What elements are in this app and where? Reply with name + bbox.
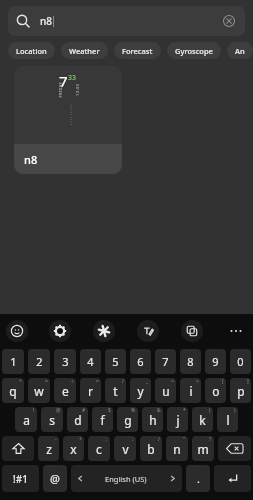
button[interactable]: Emoji [6,320,28,342]
button[interactable]: × [28,378,50,403]
button[interactable]: ÷ [54,378,76,403]
staticText: h [149,412,157,428]
button[interactable]: $ [92,407,113,432]
staticText: ) [234,407,236,414]
staticText: 9 [212,354,219,369]
staticText: Forecast [122,46,153,56]
button[interactable]: @ [43,465,67,492]
staticText: y [137,383,144,399]
button[interactable]: / [105,378,126,403]
button[interactable]: = [80,378,101,403]
staticText: e [62,383,69,399]
button[interactable]: / [140,436,162,461]
staticText: i [189,383,193,399]
button[interactable]: Weather [61,42,108,59]
button[interactable]: Stickers [93,320,115,342]
staticText: 5 [112,354,119,369]
button[interactable]: Settings [49,320,71,342]
button[interactable]: Backspace [218,436,251,461]
button[interactable]: ] [230,378,251,403]
button[interactable]: * [167,407,188,432]
button[interactable]: & [142,407,163,432]
button[interactable]: < [155,378,176,403]
staticText: !#1 [13,472,28,486]
staticText: z [46,441,52,457]
staticText: @ [56,407,61,414]
button[interactable]: 5 [105,349,126,374]
staticText: Gyroscope [175,46,213,56]
button[interactable]: + [2,378,24,403]
staticText: x [70,441,77,457]
staticText: ? [209,436,212,443]
staticText: > [196,378,199,385]
button[interactable]: 2 [28,349,50,374]
staticText: 1 [10,354,17,369]
button[interactable]: " [166,436,188,461]
button[interactable]: Location [8,42,55,59]
button[interactable]: ! [15,407,37,432]
button[interactable]: 6 [130,349,151,374]
staticText: m [197,441,209,457]
staticText: p [237,383,245,399]
button[interactable]: 0 [230,349,251,374]
button[interactable]: Clipboard [181,320,203,342]
button[interactable]: !#1 [2,465,39,492]
button[interactable]: ; [114,436,136,461]
button[interactable]: : [88,436,110,461]
staticText: Analog C [235,46,245,56]
button[interactable]: @ [41,407,63,432]
staticText: o [212,383,220,399]
button[interactable]: - [38,436,59,461]
staticText: n [173,441,181,457]
button[interactable]: > [180,378,201,403]
button[interactable]: Handwriting [137,320,159,342]
button[interactable]: ( [192,407,213,432]
staticText: ( [209,407,211,414]
staticText: # [82,407,86,414]
button[interactable]: Forecast [114,42,161,59]
staticText: 6 [137,354,144,369]
staticText: 7 [59,71,68,91]
button[interactable]: _ [130,378,151,403]
button[interactable]: 1 [2,349,24,374]
button[interactable]: More options [225,320,247,342]
staticText: f [100,412,105,428]
button[interactable]: n8 [8,6,245,36]
button[interactable]: % [117,407,138,432]
button[interactable]: Shift [2,436,34,461]
staticText: q [9,383,17,399]
button[interactable]: 7 [14,66,122,174]
button[interactable]: Analog C [227,42,253,59]
button[interactable]: ) [217,407,238,432]
staticText: 12:33 [75,83,80,96]
staticText: d [74,412,82,428]
button[interactable]: 4 [80,349,101,374]
staticText: u [162,383,170,399]
button[interactable]: 7 [155,349,176,374]
button[interactable]: 8 [180,349,201,374]
button[interactable]: [ [205,378,226,403]
staticText: [ [222,378,224,385]
button[interactable]: . [186,465,210,492]
staticText: r [88,383,93,399]
button[interactable]: Gyroscope [167,42,221,59]
button[interactable]: ? [192,436,214,461]
staticText: / [122,378,124,385]
button[interactable]: English (US) [71,465,182,492]
button[interactable]: Enter [214,465,251,492]
staticText: + [19,378,22,385]
staticText: 3 [62,354,69,369]
staticText: ] [247,378,249,385]
staticText: * [183,407,186,414]
button[interactable]: Clear search [221,13,237,29]
staticText: 8 [187,354,194,369]
staticText: w [34,383,44,399]
button[interactable]: + [63,436,84,461]
staticText: s [49,412,55,428]
staticText: % [131,407,136,414]
button[interactable]: 9 [205,349,226,374]
button[interactable]: # [67,407,88,432]
staticText: / [158,436,160,443]
staticText: Location [16,46,47,56]
button[interactable]: 3 [54,349,76,374]
